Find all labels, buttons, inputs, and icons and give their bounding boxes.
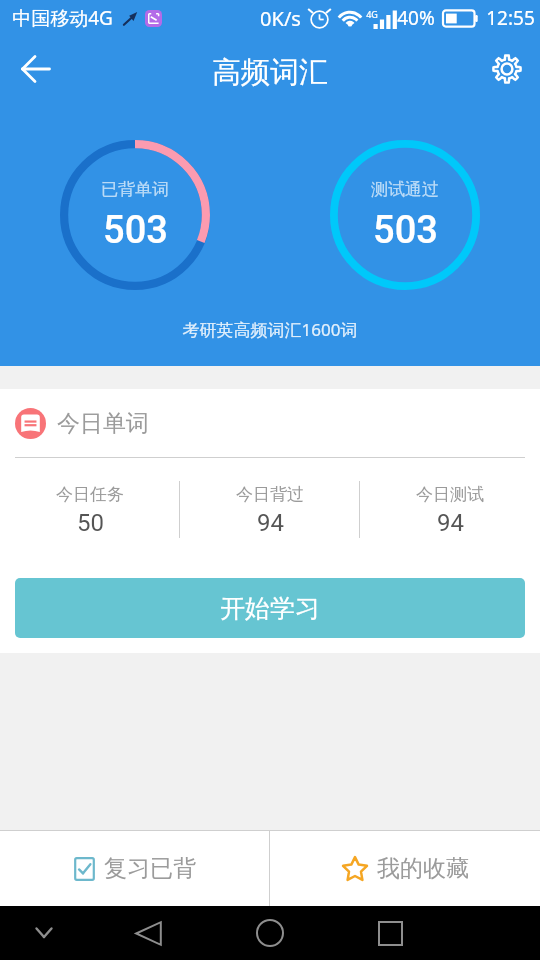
button[interactable]: 我的收藏 <box>270 831 540 906</box>
button[interactable]: Settings <box>479 41 535 97</box>
staticText: 40% <box>397 5 435 31</box>
staticText: 开始学习 <box>220 593 320 624</box>
button[interactable]: Back <box>8 41 64 97</box>
staticText: 高频词汇 <box>212 54 328 91</box>
staticText: 12:55 <box>486 5 535 31</box>
staticText: 今日任务 <box>56 484 124 505</box>
button[interactable]: Back <box>118 906 178 960</box>
staticText: 今日单词 <box>57 409 149 438</box>
staticText: 我的收藏 <box>377 854 469 883</box>
staticText: 今日测试 <box>416 484 484 505</box>
staticText: 94 <box>257 509 284 537</box>
button[interactable]: 今日任务 <box>0 460 180 560</box>
staticText: 复习已背 <box>104 854 196 883</box>
staticText: 0K/s <box>260 5 301 32</box>
button[interactable]: 复习已背 <box>0 831 269 906</box>
staticText: 今日背过 <box>236 484 304 505</box>
button[interactable]: 今日背过 <box>180 460 360 560</box>
staticText: 中国移动4G <box>12 5 113 31</box>
button[interactable]: 开始学习 <box>15 578 525 638</box>
staticText: 考研英高频词汇1600词 <box>0 318 540 341</box>
staticText: 94 <box>437 509 464 537</box>
staticText: 503 <box>103 208 168 253</box>
staticText: 503 <box>373 208 438 253</box>
staticText: 4G <box>366 8 378 20</box>
staticText: 50 <box>77 509 104 537</box>
staticText: 已背单词 <box>101 179 169 200</box>
staticText: 测试通过 <box>371 179 439 200</box>
button[interactable]: Home <box>240 906 300 960</box>
button[interactable]: 今日单词 <box>15 389 540 457</box>
button[interactable]: Hide keyboard <box>14 906 74 960</box>
button[interactable]: Recent apps <box>360 906 420 960</box>
button[interactable]: 今日测试 <box>360 460 540 560</box>
